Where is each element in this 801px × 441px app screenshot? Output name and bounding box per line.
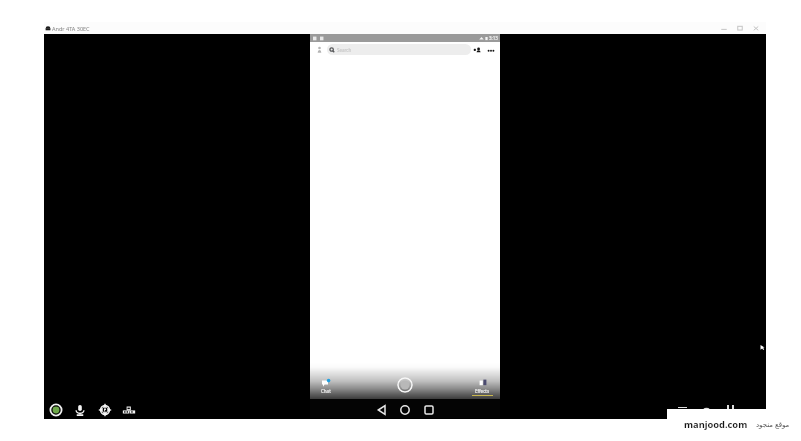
button[interactable]: Maximize <box>732 23 748 34</box>
button[interactable]: Effects <box>472 378 493 396</box>
staticText: manjood.com <box>684 418 748 431</box>
button[interactable]: More options <box>486 45 496 56</box>
button[interactable]: Location <box>98 403 112 417</box>
button[interactable]: Account <box>316 45 323 55</box>
button[interactable]: Minimize <box>716 23 732 34</box>
button[interactable]: Keyboard <box>122 403 136 417</box>
button[interactable]: Chat <box>321 378 331 394</box>
staticText: Chat <box>321 388 331 394</box>
button[interactable]: Back <box>377 405 387 415</box>
staticText: Andr 4TA 30EC <box>52 25 90 32</box>
staticText: 3:13 <box>489 35 498 41</box>
staticText: Effects <box>475 388 490 394</box>
button[interactable]: Search <box>327 44 471 55</box>
button[interactable]: Close <box>748 23 764 34</box>
button[interactable]: Recents <box>424 405 434 415</box>
button[interactable]: Microphone <box>73 403 87 417</box>
staticText: موقع منجود <box>756 420 790 430</box>
staticText: Search <box>337 47 352 53</box>
button[interactable]: Capture <box>397 377 413 393</box>
button[interactable]: Add contact <box>473 46 482 55</box>
button[interactable]: Home <box>400 405 410 415</box>
button[interactable]: Power <box>49 403 63 417</box>
